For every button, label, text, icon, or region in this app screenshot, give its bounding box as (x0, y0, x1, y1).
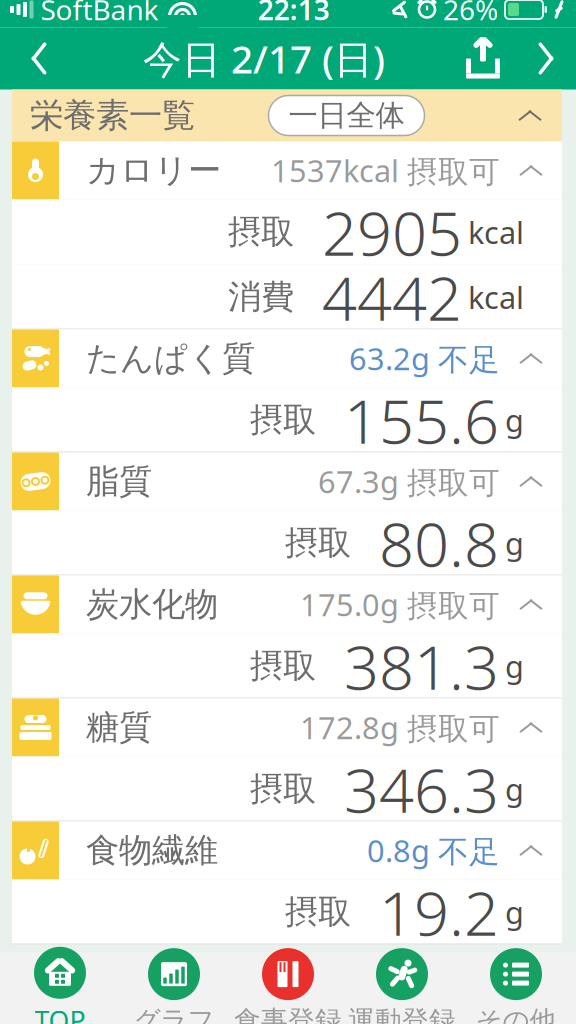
staticText: 摂取 (250, 399, 316, 440)
staticText: 4442 (322, 256, 462, 338)
staticText: 消費 (228, 276, 294, 317)
staticText: g (505, 646, 524, 686)
button[interactable]: 炭水化物 (12, 575, 562, 698)
staticText: 運動登録 (348, 1004, 456, 1024)
button[interactable]: 共有 (450, 27, 516, 89)
button[interactable]: たんぱく質 (12, 329, 562, 452)
staticText: 80.8 (379, 502, 499, 584)
staticText: 0.8g 不足 (367, 830, 500, 871)
button[interactable]: 脂質 (12, 452, 562, 575)
staticText: 糖質 (86, 707, 152, 748)
button[interactable]: TOP (3, 953, 117, 1024)
button[interactable]: 一日全体 (268, 95, 424, 135)
staticText: g (505, 400, 524, 440)
staticText: 381.3 (344, 625, 499, 707)
staticText: 175.0g 摂取可 (300, 584, 500, 625)
button[interactable]: 次の日 (516, 27, 576, 89)
staticText: グラフ (133, 1004, 214, 1024)
button[interactable]: その他 (459, 953, 573, 1024)
button[interactable]: グラフ (117, 953, 231, 1024)
staticText: 食事登録 (234, 1004, 342, 1024)
button[interactable]: 食物繊維 (12, 821, 562, 944)
staticText: カロリー (86, 150, 221, 191)
staticText: その他 (475, 1004, 556, 1024)
staticText: 2905 (322, 191, 462, 273)
staticText: 摂取 (250, 768, 316, 809)
staticText: 摂取 (285, 522, 351, 563)
staticText: 346.3 (344, 748, 499, 830)
staticText: 22:13 (258, 0, 330, 28)
button[interactable]: 前の日 (0, 27, 78, 89)
staticText: 一日全体 (288, 97, 404, 133)
staticText: TOP (34, 1003, 85, 1024)
staticText: kcal (468, 212, 524, 252)
staticText: 今日 2/17 (日) (143, 33, 385, 84)
button[interactable]: 食事登録 (231, 953, 345, 1024)
button[interactable]: 折りたたむ (498, 90, 562, 140)
staticText: 炭水化物 (86, 584, 218, 625)
staticText: 172.8g 摂取可 (300, 707, 500, 748)
staticText: 26% (443, 0, 498, 28)
staticText: g (505, 769, 524, 809)
staticText: 栄養素一覧 (30, 95, 195, 136)
staticText: g (505, 892, 524, 932)
staticText: 脂質 (86, 461, 152, 502)
staticText: 67.3g 摂取可 (318, 461, 500, 502)
staticText: SoftBank (40, 0, 158, 28)
staticText: 1537kcal 摂取可 (271, 150, 500, 191)
staticText: 摂取 (228, 211, 294, 252)
staticText: 63.2g 不足 (349, 338, 500, 379)
button[interactable]: 糖質 (12, 698, 562, 821)
staticText: 摂取 (250, 645, 316, 686)
staticText: kcal (468, 277, 524, 317)
staticText: 食物繊維 (86, 830, 218, 871)
staticText: g (505, 523, 524, 563)
staticText: 19.2 (379, 871, 499, 953)
staticText: 摂取 (285, 891, 351, 932)
button[interactable]: カロリー (12, 141, 562, 329)
staticText: 155.6 (344, 379, 499, 461)
staticText: たんぱく質 (86, 338, 255, 379)
button[interactable]: 運動登録 (345, 953, 459, 1024)
